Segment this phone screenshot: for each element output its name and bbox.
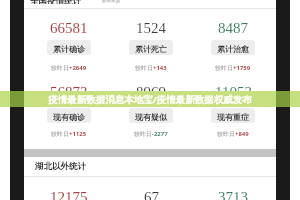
staticText: 数据来源 [102, 0, 120, 4]
staticText: +1125 [69, 130, 87, 138]
staticText: 较昨日 [135, 64, 153, 72]
staticText: +2649 [69, 64, 87, 72]
staticText: +1759 [233, 64, 251, 72]
button[interactable]: 11053 [192, 80, 274, 138]
button[interactable]: 8487 [192, 16, 274, 72]
staticText: +849 [235, 130, 249, 138]
staticText: 3713 [218, 189, 248, 200]
staticText: 11053 [215, 84, 252, 100]
button[interactable]: 3713 [192, 185, 274, 200]
staticText: 累计确诊 [53, 44, 85, 54]
button[interactable]: 66581 [28, 16, 110, 72]
staticText: 较昨日 [215, 64, 233, 72]
staticText: 湖北以外统计 [35, 161, 86, 172]
staticText: 56873 [50, 84, 88, 100]
staticText: 较昨日 [51, 64, 69, 72]
staticText: 较昨日 [217, 130, 235, 138]
button[interactable]: 56873 [28, 80, 110, 138]
staticText: 较昨日 [51, 130, 69, 138]
button[interactable]: 67 [110, 185, 192, 200]
staticText: 66581 [50, 20, 88, 36]
staticText: 现有重症 [217, 112, 249, 122]
staticText: 现有疑似 [135, 112, 167, 122]
staticText: 8487 [218, 20, 248, 36]
button[interactable]: 8969 [110, 80, 192, 138]
staticText: 67 [144, 189, 159, 200]
staticText: 1524 [136, 20, 166, 36]
staticText: 8969 [136, 84, 166, 100]
staticText: 全国疫情统计 [30, 0, 81, 4]
staticText: 12175 [50, 189, 88, 200]
button[interactable]: 12175 [28, 185, 110, 200]
staticText: 现有确诊 [53, 112, 85, 122]
staticText: 疫情最新数据消息本地宝/疫情最新数据权威发布 [0, 93, 300, 106]
button[interactable]: 1524 [110, 16, 192, 72]
staticText: -2277 [152, 130, 168, 138]
staticText: +143 [153, 64, 167, 72]
staticText: 较昨日 [134, 130, 152, 138]
staticText: 累计死亡 [135, 44, 167, 54]
staticText: 累计治愈 [217, 44, 249, 54]
